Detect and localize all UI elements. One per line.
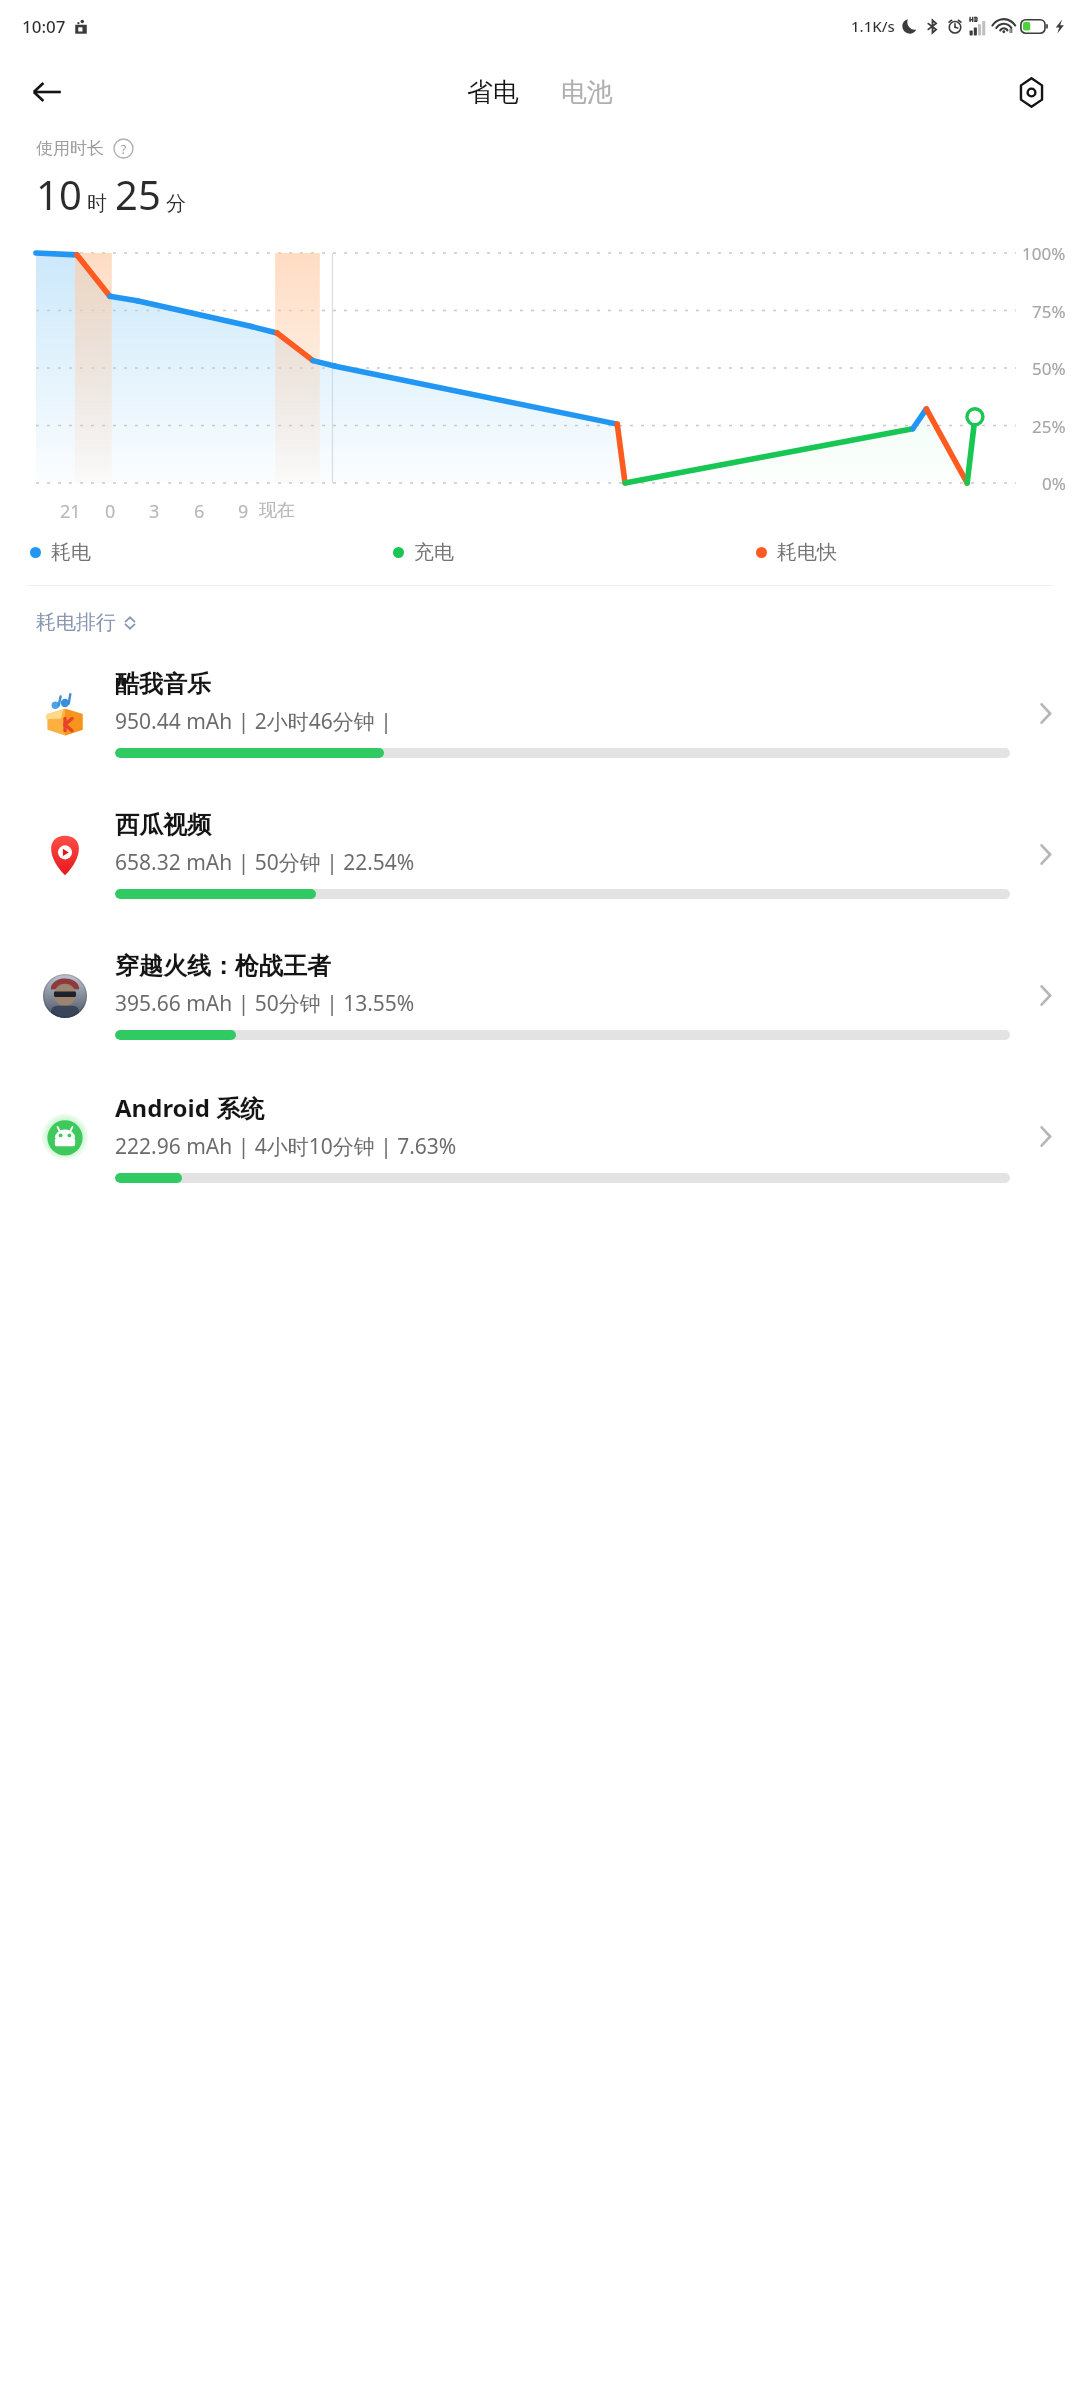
staticText: 使用时长 — [36, 138, 104, 159]
staticText: 省电 — [467, 76, 519, 109]
button[interactable]: 穿越火线：枪战王者 — [0, 925, 1080, 1066]
staticText: 时 — [87, 191, 107, 216]
staticText: 3 — [149, 499, 160, 524]
staticText: 6 — [194, 499, 205, 524]
staticText: 9 — [238, 499, 249, 524]
staticText: Android 系统 — [115, 1091, 265, 1124]
button[interactable]: 说明 — [113, 138, 134, 159]
staticText: 0% — [1042, 472, 1066, 495]
staticText: 充电 — [414, 540, 454, 565]
staticText: 10:07 — [22, 15, 66, 38]
staticText: 25 — [115, 167, 161, 221]
button[interactable]: 电池 — [551, 68, 623, 117]
button[interactable]: 耗电排行 — [36, 610, 137, 635]
staticText: 75% — [1032, 300, 1066, 323]
staticText: 穿越火线：枪战王者 — [115, 951, 331, 981]
staticText: 0 — [105, 499, 116, 524]
staticText: 25% — [1032, 415, 1066, 438]
staticText: 耗电快 — [777, 540, 837, 565]
staticText: 酷我音乐 — [115, 669, 211, 699]
staticText: ? — [121, 141, 127, 157]
staticText: 1.1K/s — [851, 16, 895, 36]
staticText: 658.32 mAh | 50分钟 | 22.54% — [115, 848, 415, 877]
staticText: 分 — [166, 191, 186, 216]
staticText: 21 — [60, 499, 81, 524]
button[interactable]: Android 系统 — [0, 1066, 1080, 1207]
staticText: 100% — [1022, 242, 1066, 265]
staticText: 950.44 mAh | 2小时46分钟 | — [115, 707, 392, 736]
staticText: 50% — [1032, 357, 1066, 380]
staticText: 395.66 mAh | 50分钟 | 13.55% — [115, 989, 415, 1018]
staticText: 耗电 — [51, 540, 91, 565]
button[interactable]: 西瓜视频 — [0, 784, 1080, 925]
staticText: 10 — [36, 167, 82, 221]
staticText: 西瓜视频 — [115, 810, 211, 840]
button[interactable]: 返回 — [18, 63, 76, 121]
button[interactable]: 省电 — [457, 68, 529, 117]
staticText: 耗电排行 — [36, 610, 116, 635]
button[interactable]: 设置 — [1002, 63, 1060, 121]
button[interactable]: 酷我音乐 — [0, 643, 1080, 784]
staticText: 现在 — [259, 499, 295, 522]
staticText: 222.96 mAh | 4小时10分钟 | 7.63% — [115, 1132, 457, 1161]
staticText: 电池 — [561, 76, 613, 109]
